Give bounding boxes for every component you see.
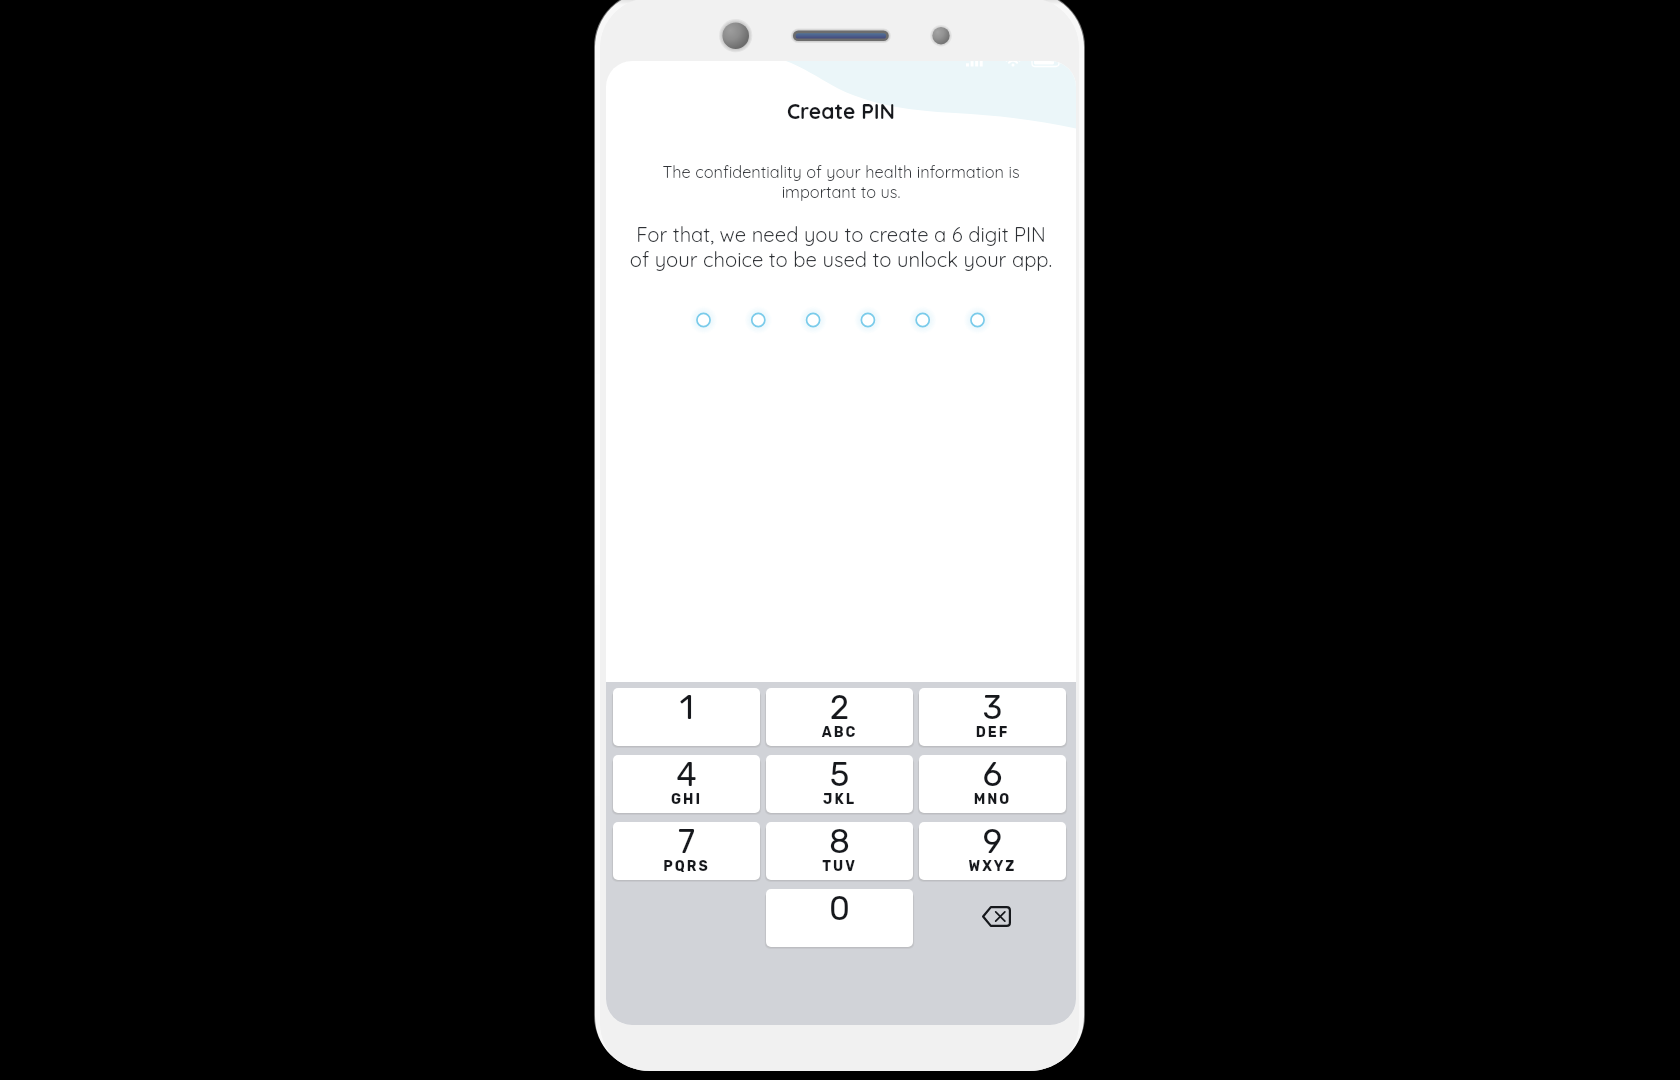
staticText: ABC [766,724,913,741]
button[interactable]: 9 [919,822,1066,880]
staticText: 3 [919,688,1066,727]
button[interactable]: 6 [919,755,1066,813]
staticText: TUV [766,858,913,875]
staticText: 6 [919,755,1066,794]
staticText: 2 [766,688,913,727]
staticText: DEF [919,724,1066,741]
staticText: JKL [766,791,913,808]
button[interactable]: 3 [919,688,1066,746]
button[interactable]: 8 [766,822,913,880]
staticText: 5 [766,755,913,794]
button[interactable]: 1 [613,688,760,746]
staticText: GHI [613,791,760,808]
staticText: Create PIN [606,98,1076,124]
button[interactable]: 7 [613,822,760,880]
button[interactable]: 4 [613,755,760,813]
staticText: 8 [766,822,913,861]
staticText: 1 [613,688,760,727]
staticText: MNO [919,791,1066,808]
staticText: 0 [766,889,913,928]
button[interactable]: 2 [766,688,913,746]
staticText: 9 [919,822,1066,861]
button[interactable]: 0 [766,889,913,947]
button[interactable]: Backspace [919,889,1066,947]
button[interactable]: 5 [766,755,913,813]
staticText: The confidentiality of your health infor… [658,162,1024,202]
staticText: 7 [613,822,760,861]
staticText: PQRS [613,858,760,875]
staticText: For that, we need you to create a 6 digi… [627,222,1055,272]
staticText: 4 [613,755,760,794]
staticText: WXYZ [919,858,1066,875]
